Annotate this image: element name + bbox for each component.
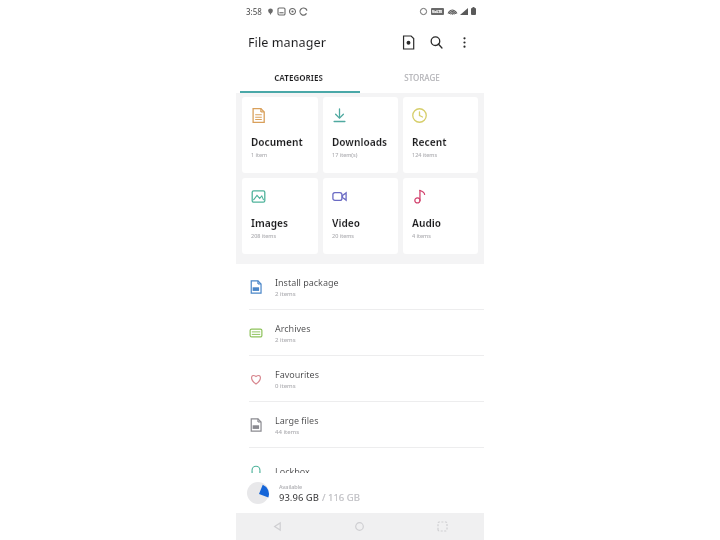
button[interactable]: Recent xyxy=(403,97,478,173)
button[interactable]: Video xyxy=(323,178,398,254)
staticText: STORAGE xyxy=(404,72,440,83)
staticText: Archives xyxy=(275,322,311,334)
button[interactable]: CATEGORIES xyxy=(236,62,360,93)
staticText: 17 item(s) xyxy=(332,151,358,158)
button[interactable]: Archives xyxy=(236,310,484,355)
staticText: 124 items xyxy=(412,151,438,158)
staticText: 1 item xyxy=(251,151,268,158)
staticText: Large files xyxy=(275,414,319,426)
button[interactable]: Audio xyxy=(403,178,478,254)
staticText: 93.96 GB xyxy=(279,491,322,504)
staticText: 2 items xyxy=(275,336,296,344)
staticText: VoLTE xyxy=(432,9,443,14)
staticText: 2 items xyxy=(275,290,296,298)
button[interactable]: Favourites xyxy=(236,356,484,401)
button[interactable]: Install package xyxy=(236,264,484,309)
staticText: Images xyxy=(251,216,288,230)
staticText: Document xyxy=(251,135,303,149)
staticText: Audio xyxy=(412,216,441,230)
staticText: File manager xyxy=(248,34,326,51)
staticText: Video xyxy=(332,216,361,230)
staticText: 4 items xyxy=(412,232,431,239)
staticText: 208 items xyxy=(251,232,277,239)
button[interactable]: Document xyxy=(242,97,318,173)
button[interactable]: Back xyxy=(236,513,318,540)
staticText: Install package xyxy=(275,276,339,288)
button[interactable]: Search xyxy=(422,28,450,56)
staticText: Available xyxy=(279,483,303,490)
staticText: Downloads xyxy=(332,135,387,149)
button[interactable]: STORAGE xyxy=(360,62,484,93)
button[interactable]: Downloads xyxy=(323,97,398,173)
button[interactable]: Images xyxy=(242,178,318,254)
staticText: 3:58 xyxy=(246,6,262,17)
staticText: CATEGORIES xyxy=(274,72,323,83)
button[interactable]: Storage analysis xyxy=(394,28,422,56)
staticText: Lockbox xyxy=(275,465,310,477)
staticText: 0 items xyxy=(275,382,296,390)
button[interactable]: Available xyxy=(236,473,484,513)
button[interactable]: Large files xyxy=(236,402,484,447)
staticText: Recent xyxy=(412,135,447,149)
staticText: 44 items xyxy=(275,428,300,436)
button[interactable]: More options xyxy=(450,28,478,56)
button[interactable]: Lockbox xyxy=(236,448,484,493)
staticText: 20 items xyxy=(332,232,355,239)
staticText: / 116 GB xyxy=(322,491,360,504)
staticText: Favourites xyxy=(275,368,319,380)
